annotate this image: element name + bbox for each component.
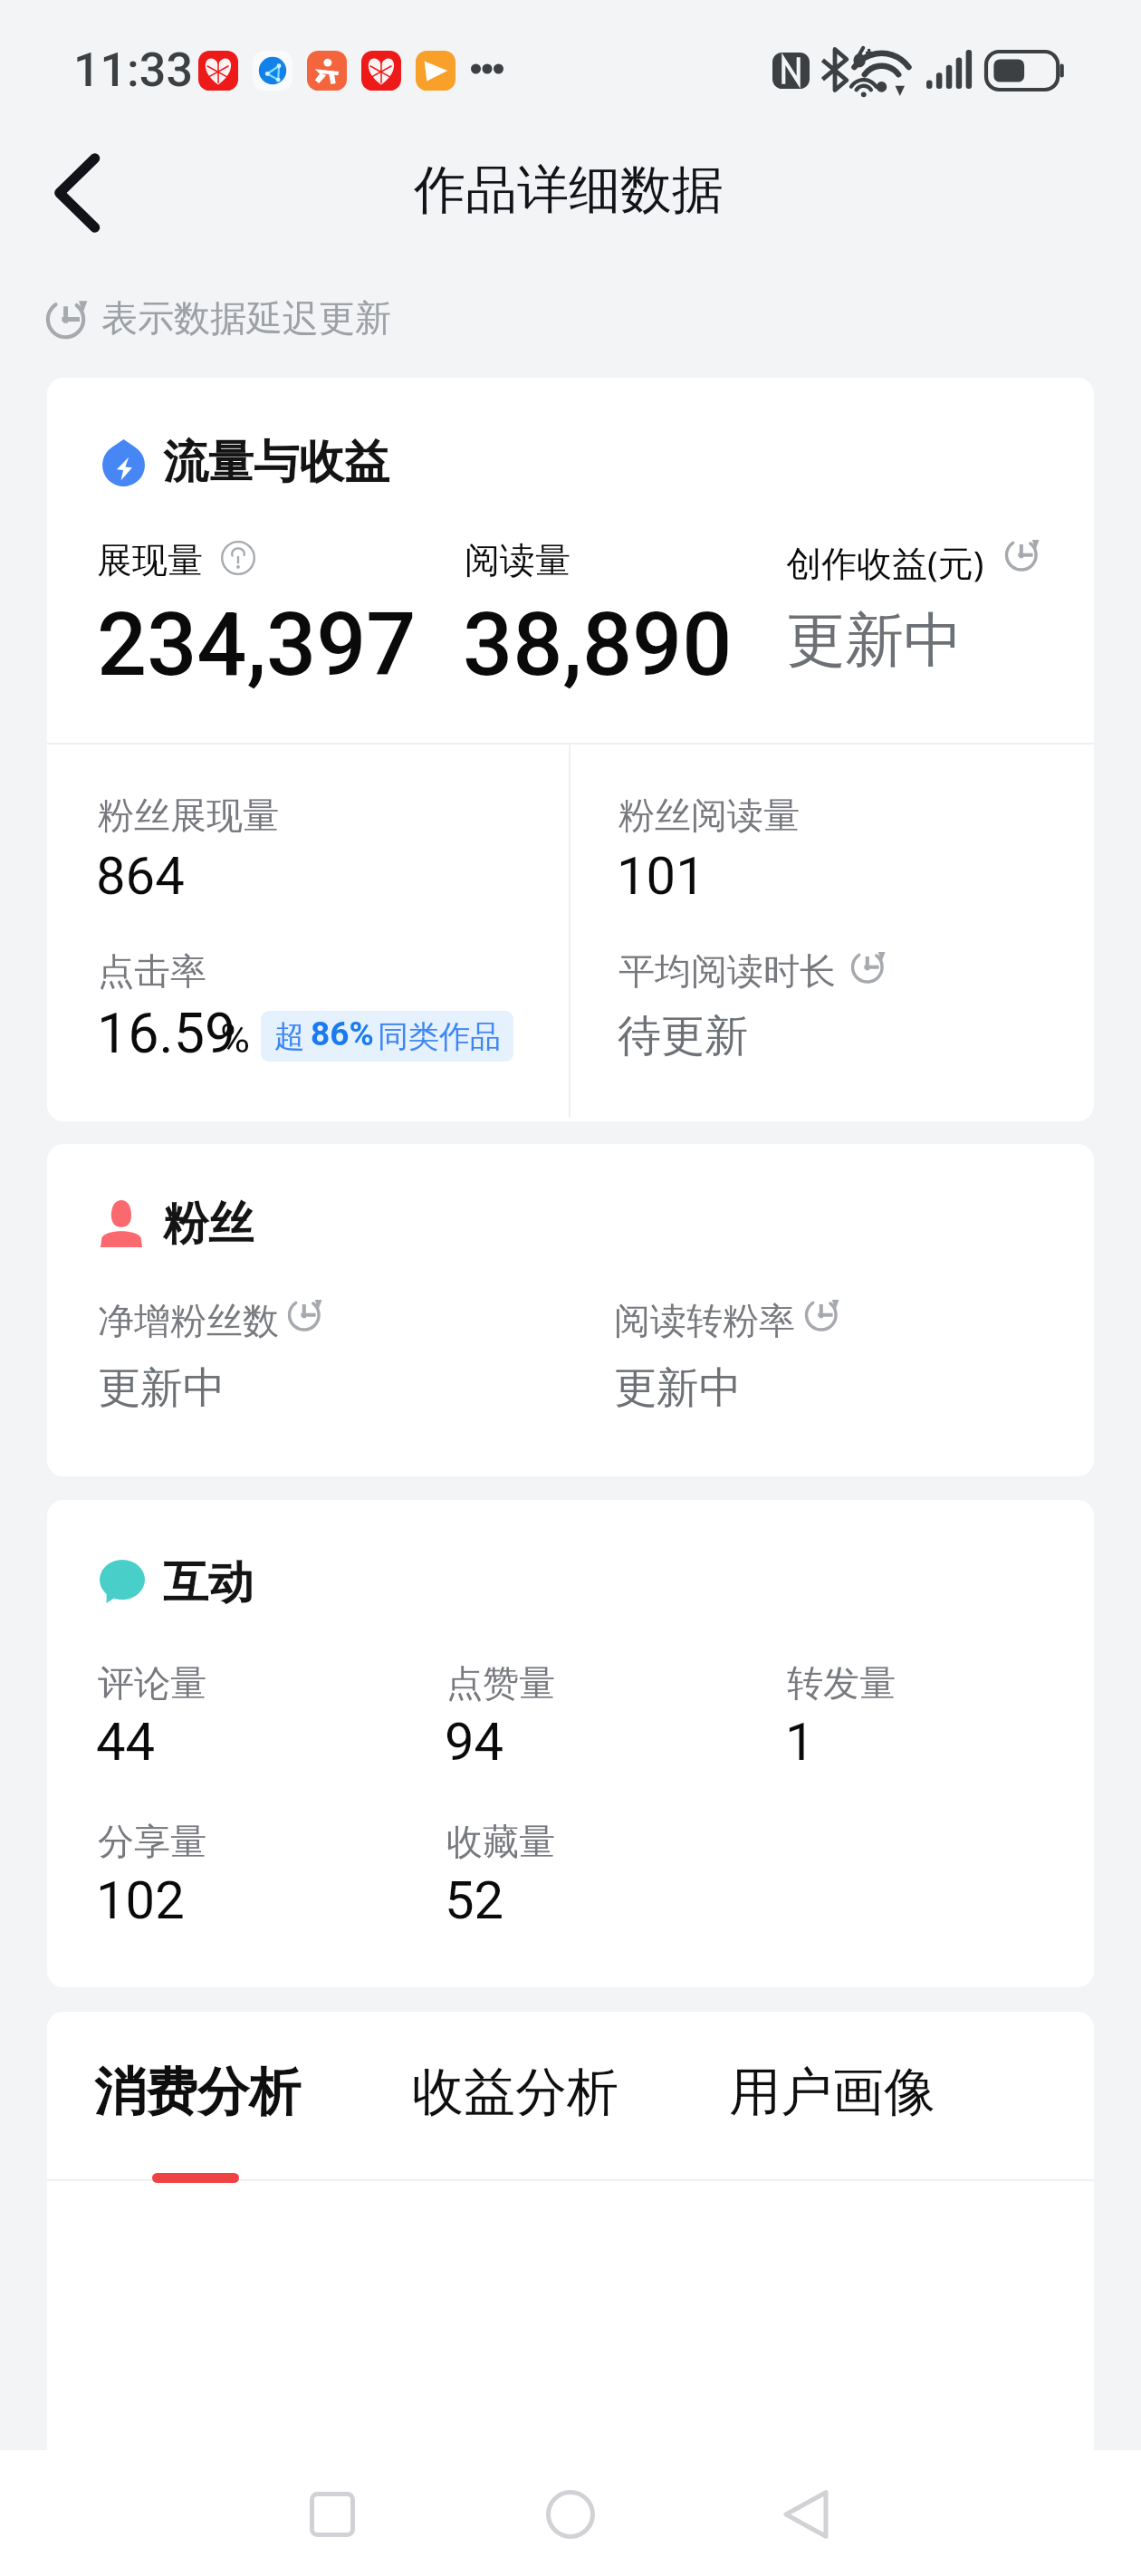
staticText: 更新中 [98, 1361, 225, 1415]
staticText: 101 [617, 845, 705, 907]
staticText: 阅读量 [465, 538, 570, 582]
staticText: 864 [96, 845, 185, 907]
staticText: 102 [96, 1870, 185, 1931]
staticText: 转发量 [787, 1660, 896, 1706]
staticText: % [220, 1014, 250, 1062]
staticText: 收益分析 [412, 2060, 618, 2125]
staticText: 评论量 [98, 1660, 206, 1706]
staticText: 创作收益(元) [786, 538, 984, 586]
button[interactable] [76, 2043, 321, 2161]
staticText: 作品详细数据 [414, 158, 724, 223]
staticText: 234,397 [97, 593, 417, 697]
staticText: 平均阅读时长 [618, 948, 836, 994]
staticText: 展现量 [97, 538, 203, 582]
staticText: 表示数据延迟更新 [101, 295, 391, 341]
button[interactable] [394, 2043, 638, 2161]
staticText: 点击率 [98, 948, 206, 994]
button[interactable] [462, 533, 770, 687]
staticText: 粉丝阅读量 [618, 793, 800, 838]
staticText: 分享量 [98, 1819, 206, 1864]
staticText: 待更新 [618, 1009, 748, 1063]
staticText: 阅读转粉率 [614, 1298, 795, 1343]
button[interactable] [711, 2043, 955, 2161]
staticText: 收藏量 [446, 1819, 555, 1864]
button[interactable]: Recent apps [278, 2460, 387, 2569]
staticText: 1 [785, 1711, 815, 1773]
staticText: 52 [445, 1870, 504, 1931]
staticText: 消费分析 [94, 2060, 301, 2125]
button[interactable]: Back [27, 143, 127, 243]
staticText: 超 [274, 1017, 305, 1056]
staticText: 同类作品 [378, 1017, 501, 1056]
staticText: 粉丝 [163, 1196, 254, 1253]
staticText: 86% [311, 1014, 374, 1053]
staticText: 粉丝展现量 [98, 793, 279, 838]
button[interactable]: 数据延迟更新 [997, 531, 1048, 582]
staticText: 16.59 [97, 1001, 236, 1065]
staticText: 更新中 [614, 1361, 742, 1415]
staticText: 94 [445, 1711, 504, 1773]
button[interactable]: 数据延迟更新 [843, 943, 894, 994]
button[interactable]: Home [516, 2460, 625, 2569]
button[interactable]: Back [752, 2460, 860, 2569]
staticText: 11:33 [73, 43, 193, 98]
button[interactable] [783, 533, 1046, 687]
staticText: 44 [96, 1711, 156, 1773]
button[interactable]: 展现量说明 [216, 535, 261, 581]
staticText: 点赞量 [446, 1660, 555, 1706]
staticText: 更新中 [786, 603, 963, 678]
button[interactable] [96, 533, 440, 687]
staticText: 用户画像 [729, 2060, 935, 2125]
staticText: 净增粉丝数 [98, 1298, 279, 1343]
staticText: 流量与收益 [163, 434, 389, 491]
staticText: 38,890 [463, 593, 733, 697]
staticText: 互动 [163, 1554, 254, 1611]
